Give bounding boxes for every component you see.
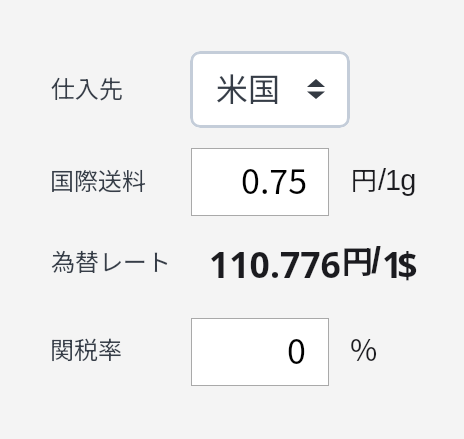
staticText: 米国 bbox=[216, 64, 281, 110]
staticText: 0.75 bbox=[241, 155, 308, 209]
staticText: /1g bbox=[378, 164, 416, 196]
staticText: 国際送料 bbox=[50, 162, 146, 197]
other: Change supplier country bbox=[307, 79, 325, 99]
staticText: 円 bbox=[342, 237, 373, 282]
staticText: / bbox=[371, 240, 382, 280]
staticText: 110.776 bbox=[209, 240, 341, 288]
staticText: % bbox=[350, 327, 378, 374]
staticText: 0 bbox=[287, 325, 306, 379]
staticText: 1$ bbox=[382, 240, 413, 288]
button[interactable]: 0 bbox=[191, 318, 329, 386]
staticText: 為替レート bbox=[51, 243, 171, 278]
staticText: 仕入先 bbox=[51, 70, 123, 105]
button[interactable]: 0.75 bbox=[191, 148, 329, 216]
staticText: 関税率 bbox=[50, 331, 122, 366]
staticText: 円 bbox=[351, 160, 378, 198]
button[interactable]: 米国 bbox=[190, 51, 350, 128]
